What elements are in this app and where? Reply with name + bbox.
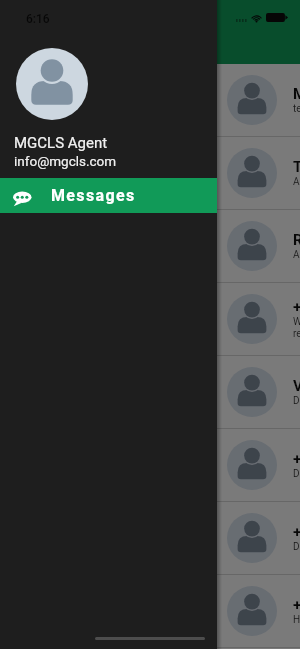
button[interactable]: Refilwe bbox=[217, 210, 300, 282]
staticText: Messages bbox=[51, 186, 136, 205]
staticText: Done bbox=[293, 541, 300, 553]
button[interactable]: Account photo bbox=[0, 0, 217, 178]
staticText: info@mgcls.com bbox=[14, 153, 117, 169]
staticText: MGCLS Agent bbox=[293, 85, 300, 103]
staticText: Thabo Mokoena bbox=[293, 158, 300, 176]
staticText: test message bbox=[293, 103, 300, 115]
staticText: Are you there? bbox=[293, 249, 300, 261]
staticText: Will confirm reception bbox=[293, 316, 300, 340]
staticText: 6:16 bbox=[26, 12, 50, 26]
button[interactable]: +27 84 778 9021 bbox=[217, 575, 300, 647]
button[interactable]: +27 82 404 1122 bbox=[217, 502, 300, 574]
staticText: +27 84 778 9021 bbox=[293, 596, 300, 614]
staticText: MGCLS Agent bbox=[14, 134, 108, 152]
button[interactable]: MGCLS Agent bbox=[217, 64, 300, 136]
button[interactable]: Vusi Ndlovu bbox=[217, 356, 300, 428]
staticText: +27 82 404 1122 bbox=[293, 523, 300, 541]
staticText: Vusi Ndlovu bbox=[293, 377, 300, 395]
other: Mobile signal bbox=[236, 19, 248, 22]
button[interactable]: +27 71 555 0199 bbox=[217, 429, 300, 501]
staticText: Hello there bbox=[293, 614, 300, 626]
staticText: Refilwe bbox=[293, 231, 300, 249]
staticText: +27 83 123 4567 bbox=[293, 298, 300, 316]
button[interactable]: Messages bbox=[0, 178, 217, 213]
button[interactable]: Close navigation drawer bbox=[0, 0, 300, 649]
other: Account photo bbox=[16, 48, 88, 120]
button[interactable]: +27 83 123 4567 bbox=[217, 283, 300, 355]
button[interactable]: Thabo Mokoena bbox=[217, 137, 300, 209]
staticText: Done thanks bbox=[293, 395, 300, 407]
staticText: Done bbox=[293, 468, 300, 480]
staticText: Around 5pm bbox=[293, 176, 300, 188]
staticText: +27 71 555 0199 bbox=[293, 450, 300, 468]
